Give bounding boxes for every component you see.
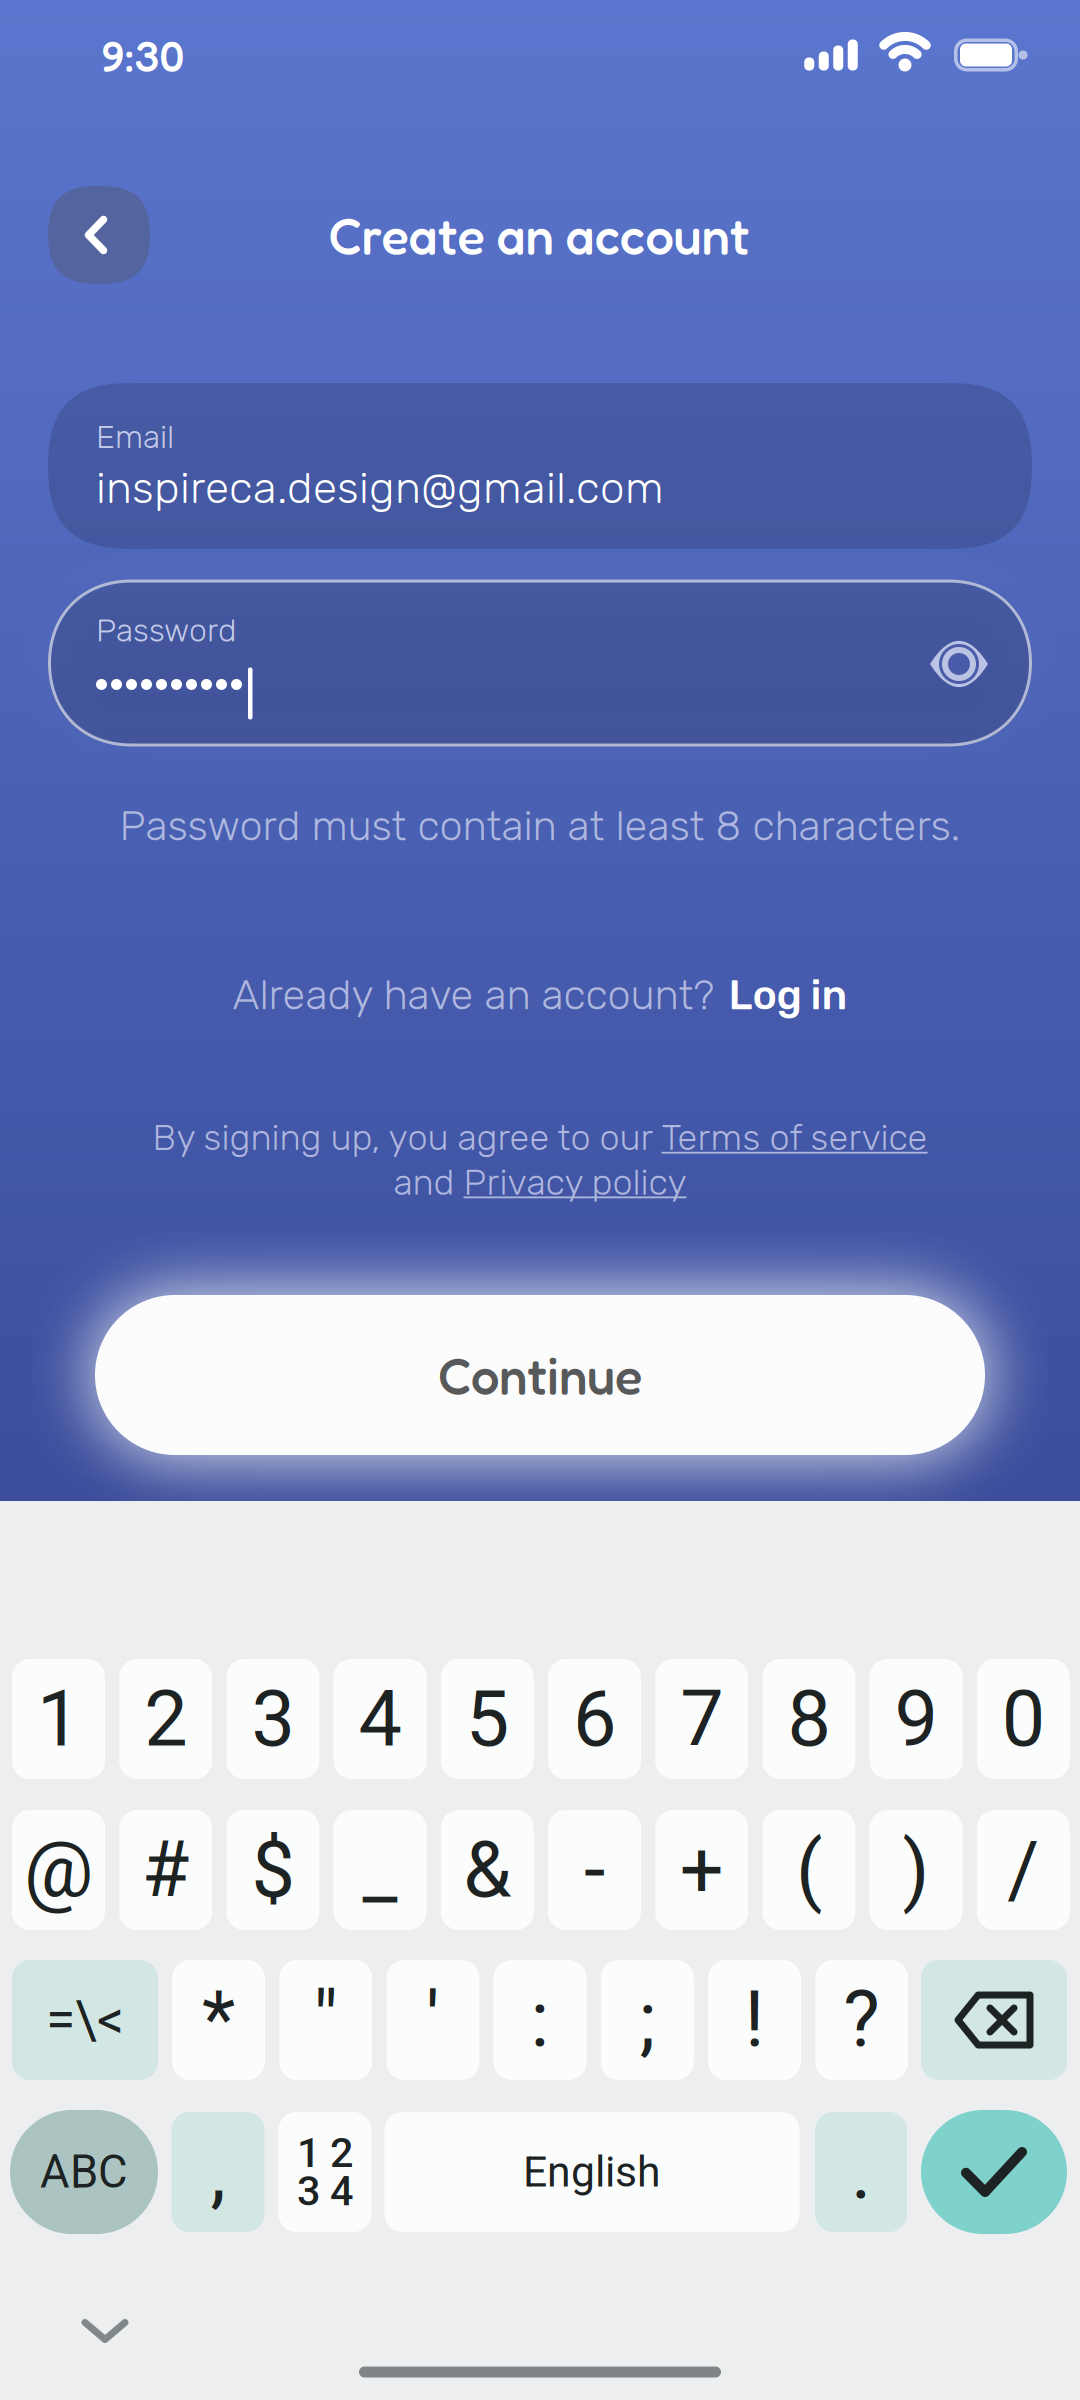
staticText: Already have an account? [232,970,714,1019]
button[interactable]: Dismiss keyboard [85,2322,125,2339]
button[interactable]: Show password [930,642,988,686]
staticText: By signing up, you agree to our [152,1116,661,1159]
button[interactable]: Continue [95,1295,985,1455]
button[interactable]: * [172,1960,265,2080]
button[interactable]: " [279,1960,372,2080]
button[interactable]: 0 [977,1659,1070,1779]
button[interactable]: Done [921,2110,1067,2234]
button[interactable]: , [171,2112,264,2232]
staticText: Password must contain at least 8 charact… [119,801,960,850]
staticText: 3 [251,1674,294,1764]
staticText: 1 [37,1674,80,1764]
button[interactable]: Back [48,186,150,284]
button[interactable]: Privacy policy [463,1161,686,1204]
button[interactable]: Space [384,2112,799,2232]
button[interactable]: 9 [870,1659,963,1779]
staticText: and [393,1161,463,1204]
staticText: inspireca.design@gmail.com [96,462,664,514]
button[interactable]: 1 [12,1659,105,1779]
staticText: 5 [466,1674,509,1764]
button[interactable]: / [977,1810,1070,1930]
button[interactable]: 2 [119,1659,212,1779]
staticText: 0 [1002,1674,1045,1764]
staticText: " [313,1975,338,2065]
staticText: + [680,1825,724,1915]
staticText: 4 [359,1674,402,1764]
staticText: , [210,2127,225,2217]
staticText: 8 [787,1674,830,1764]
button[interactable]: ' [386,1960,479,2080]
staticText: 9:30 [101,30,184,82]
button[interactable]: ( [762,1810,855,1930]
staticText: ( [796,1825,822,1915]
staticText: ; [639,1975,655,2065]
button[interactable]: - [548,1810,641,1930]
staticText: @ [24,1825,93,1915]
staticText: 2 [144,1674,187,1764]
staticText: Log in [728,970,847,1019]
staticText: ! [744,1975,764,2065]
staticText: Continue [438,1344,642,1406]
button[interactable]: Delete [921,1960,1067,2080]
staticText: * [202,1975,235,2065]
staticText: ABC [40,2145,128,2198]
button[interactable]: + [655,1810,748,1930]
button[interactable]: : [494,1960,587,2080]
button[interactable]: & [441,1810,534,1930]
staticText: _ [363,1825,398,1915]
button[interactable]: 5 [441,1659,534,1779]
staticText: $ [251,1825,294,1915]
staticText: ) [903,1825,930,1915]
button[interactable]: . [815,2112,907,2232]
staticText: 6 [573,1674,616,1764]
staticText: # [142,1825,190,1915]
button[interactable]: @ [12,1810,105,1930]
button[interactable]: Terms of service [661,1116,927,1159]
button[interactable]: # [119,1810,212,1930]
staticText: - [584,1825,605,1915]
staticText: 9 [895,1674,938,1764]
button[interactable]: 3 [226,1659,319,1779]
button[interactable]: 6 [548,1659,641,1779]
button[interactable]: _ [334,1810,427,1930]
staticText: English [523,2147,661,2197]
staticText: =\< [46,1989,124,2051]
staticText: Terms of service [661,1116,927,1159]
staticText: Create an account [328,204,749,266]
staticText: 3 4 [297,2167,353,2215]
staticText: 1 2 [297,2129,353,2177]
staticText: / [1007,1825,1039,1915]
button[interactable]: ; [601,1960,694,2080]
button[interactable]: Password [48,579,1032,746]
button[interactable]: ! [708,1960,801,2080]
staticText: ' [426,1975,440,2065]
button[interactable]: ) [870,1810,963,1930]
staticText: Email [96,418,174,456]
staticText: & [463,1825,511,1915]
staticText: : [531,1975,550,2065]
button[interactable]: ? [815,1960,908,2080]
button[interactable]: 4 [334,1659,427,1779]
staticText: . [851,2127,871,2217]
staticText: 7 [680,1674,723,1764]
button[interactable]: 8 [762,1659,855,1779]
button[interactable]: $ [226,1810,319,1930]
button[interactable]: 7 [655,1659,748,1779]
staticText: Privacy policy [463,1161,686,1204]
staticText: Password [96,611,237,649]
button[interactable]: Log in [728,970,847,1019]
button[interactable]: Email [48,383,1032,549]
button[interactable]: Letters [10,2110,158,2234]
button[interactable]: =\< [12,1960,158,2080]
button[interactable]: Numbers [278,2112,371,2232]
staticText: ? [843,1975,880,2065]
